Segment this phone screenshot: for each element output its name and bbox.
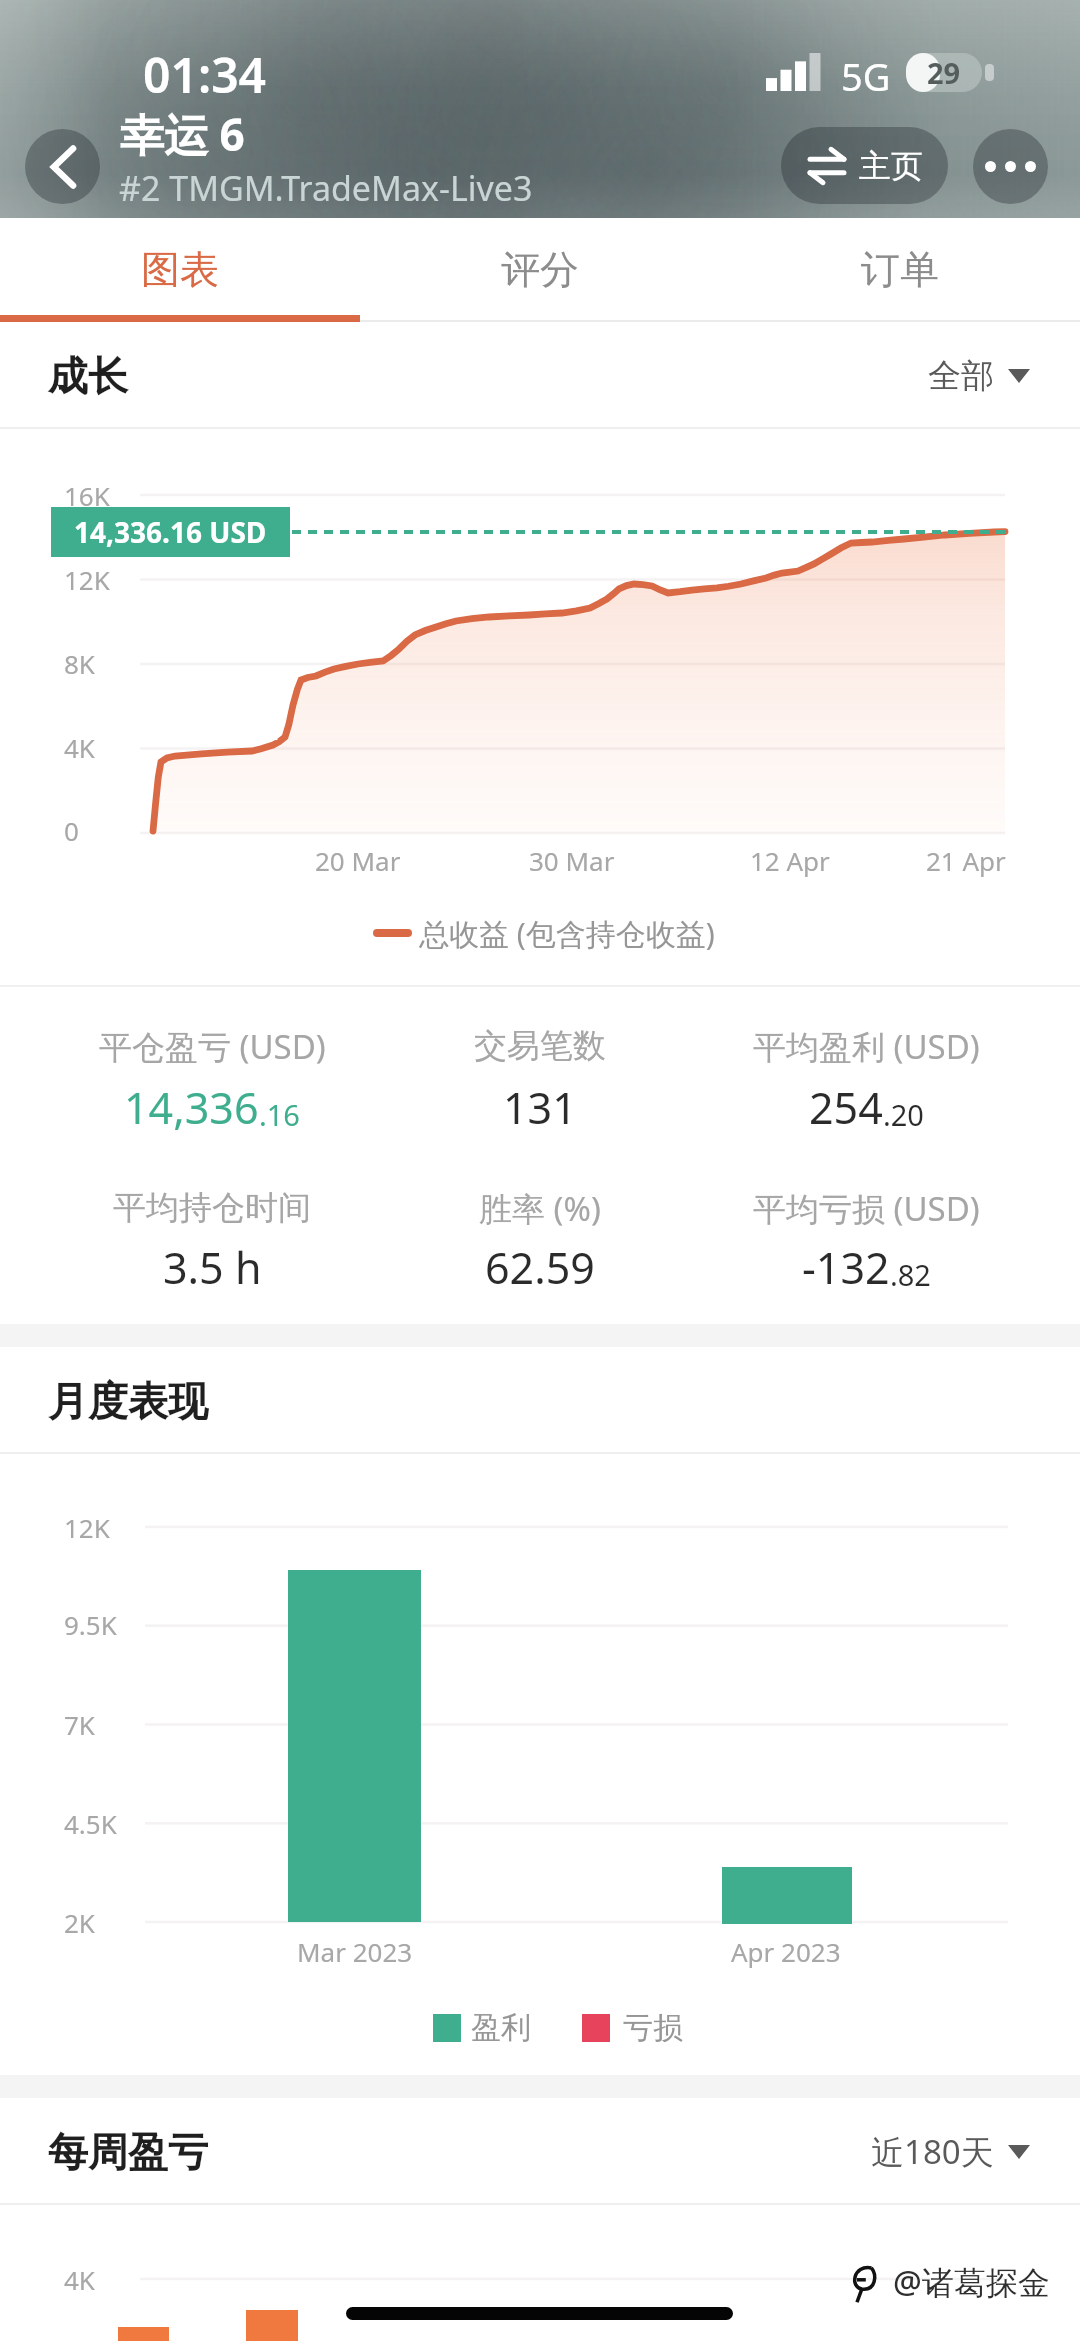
staticText: 交易笔数	[474, 1025, 606, 1067]
staticText: 平仓盈亏 (USD)	[99, 1024, 326, 1069]
staticText: .16	[259, 1095, 300, 1134]
staticText: .82	[890, 1255, 931, 1294]
staticText: 8K	[64, 646, 95, 681]
staticText: 平均亏损 (USD)	[753, 1186, 980, 1231]
staticText: 0	[64, 813, 79, 848]
staticText: 12K	[64, 562, 110, 597]
staticText: 图表	[141, 245, 219, 294]
button[interactable]: 主页	[781, 127, 948, 204]
staticText: 254	[809, 1078, 883, 1137]
staticText: 胜率 (%)	[479, 1186, 601, 1231]
button[interactable]: 评分	[360, 218, 720, 322]
staticText: 2K	[64, 1905, 95, 1940]
staticText: 12K	[64, 1510, 110, 1545]
staticText: 12 Apr	[750, 843, 830, 878]
staticText: 平均持仓时间	[113, 1187, 311, 1229]
staticText: 20 Mar	[315, 843, 401, 878]
staticText: @诸葛探金	[893, 2260, 1050, 2304]
staticText: 总收益 (包含持仓收益)	[419, 913, 715, 954]
button[interactable]: 图表	[0, 218, 360, 322]
staticText: 62.59	[485, 1238, 595, 1297]
button[interactable]: 近180天	[865, 2123, 1036, 2180]
staticText: .20	[883, 1095, 924, 1134]
staticText: Apr 2023	[731, 1934, 841, 1969]
staticText: 7K	[64, 1707, 95, 1742]
staticText: 5G	[841, 50, 891, 102]
staticText: 主页	[859, 146, 923, 186]
button[interactable]: Back	[25, 129, 100, 204]
staticText: 评分	[501, 245, 579, 294]
staticText: 3.5 h	[163, 1238, 262, 1297]
staticText: 14,336.16 USD	[74, 513, 267, 551]
staticText: 月度表现	[48, 1376, 208, 1426]
staticText: 亏损	[623, 2009, 683, 2047]
staticText: #2 TMGM.TradeMax-Live3	[119, 165, 533, 204]
staticText: 30 Mar	[529, 843, 615, 878]
staticText: 成长	[48, 351, 128, 401]
staticText: 01:34	[143, 42, 267, 107]
staticText: 近180天	[871, 2129, 994, 2174]
staticText: 4K	[64, 730, 95, 765]
button[interactable]: 全部	[922, 349, 1036, 403]
button[interactable]: More options	[973, 129, 1048, 204]
staticText: 每周盈亏	[48, 2127, 208, 2177]
staticText: Mar 2023	[297, 1934, 413, 1969]
staticText: 盈利	[471, 2009, 531, 2047]
staticText: 16K	[64, 478, 110, 513]
staticText: 29	[927, 53, 961, 92]
staticText: 14,336	[124, 1078, 259, 1137]
staticText: 订单	[861, 245, 939, 294]
button[interactable]: 幸运 6	[119, 104, 639, 204]
staticText: 131	[503, 1078, 577, 1137]
button[interactable]: 订单	[720, 218, 1080, 322]
staticText: 4.5K	[64, 1806, 117, 1841]
staticText: 平均盈利 (USD)	[753, 1024, 980, 1069]
staticText: 幸运 6	[120, 104, 245, 164]
staticText: 4K	[64, 2262, 95, 2297]
staticText: -132	[802, 1238, 890, 1297]
staticText: 9.5K	[64, 1607, 117, 1642]
staticText: 全部	[928, 355, 994, 397]
staticText: 21 Apr	[926, 843, 1006, 878]
